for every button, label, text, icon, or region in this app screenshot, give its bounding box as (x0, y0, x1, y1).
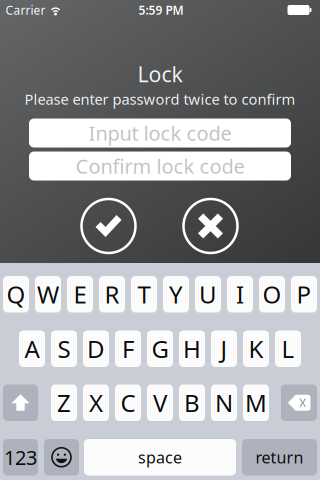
button[interactable]: H (179, 330, 205, 367)
button[interactable]: W (35, 276, 61, 312)
button[interactable]: R (99, 276, 125, 312)
staticText: Q (6, 278, 25, 310)
button[interactable]: Confirm lock code (29, 151, 291, 180)
staticText: D (87, 333, 105, 365)
staticText: space (138, 447, 182, 468)
staticText: Please enter password twice to confirm (24, 89, 295, 109)
button[interactable]: A (19, 330, 45, 367)
button[interactable]: Delete (281, 384, 317, 421)
button[interactable]: Cancel (182, 198, 238, 254)
staticText: K (248, 333, 263, 365)
button[interactable]: T (131, 276, 157, 312)
button[interactable]: D (83, 330, 109, 367)
staticText: Y (169, 278, 183, 310)
staticText: M (245, 387, 267, 419)
staticText: G (151, 333, 168, 365)
button[interactable]: K (243, 330, 269, 367)
staticText: N (215, 387, 233, 419)
staticText: C (120, 387, 135, 419)
button[interactable]: 123 (3, 439, 38, 475)
staticText: I (236, 278, 244, 310)
staticText: Carrier (5, 2, 45, 18)
staticText: Input lock code (88, 120, 231, 146)
staticText: U (199, 278, 217, 310)
staticText: V (153, 387, 167, 419)
staticText: W (37, 278, 59, 310)
staticText: H (183, 333, 201, 365)
button[interactable]: X (83, 384, 109, 421)
button[interactable]: Y (163, 276, 189, 312)
button[interactable]: Q (3, 276, 29, 312)
staticText: L (281, 333, 294, 365)
staticText: A (24, 333, 39, 365)
staticText: Z (57, 387, 71, 419)
button[interactable]: O (259, 276, 285, 312)
button[interactable]: P (291, 276, 317, 312)
button[interactable]: Z (51, 384, 77, 421)
button[interactable]: return (242, 439, 317, 475)
button[interactable]: V (147, 384, 173, 421)
staticText: S (57, 333, 70, 365)
button[interactable]: Confirm (80, 198, 136, 254)
button[interactable]: space (84, 439, 236, 475)
button[interactable]: Input lock code (29, 118, 291, 147)
staticText: 123 (4, 444, 37, 471)
staticText: F (122, 333, 134, 365)
button[interactable]: C (115, 384, 141, 421)
staticText: Confirm lock code (75, 153, 244, 179)
staticText: E (73, 278, 86, 310)
button[interactable]: I (227, 276, 253, 312)
button[interactable]: F (115, 330, 141, 367)
button[interactable]: Emoji (44, 439, 79, 475)
staticText: R (104, 278, 119, 310)
button[interactable]: B (179, 384, 205, 421)
staticText: T (137, 278, 150, 310)
button[interactable]: Shift (3, 384, 38, 421)
button[interactable]: U (195, 276, 221, 312)
button[interactable]: G (147, 330, 173, 367)
staticText: B (184, 387, 200, 419)
staticText: P (296, 278, 311, 310)
staticText: J (220, 333, 227, 365)
staticText: 5:59 PM (138, 2, 183, 18)
staticText: X (89, 387, 103, 419)
button[interactable]: S (51, 330, 77, 367)
button[interactable]: M (243, 384, 269, 421)
staticText: Lock (137, 60, 182, 88)
button[interactable]: L (275, 330, 301, 367)
button[interactable]: N (211, 384, 237, 421)
staticText: return (255, 447, 303, 468)
button[interactable]: E (67, 276, 93, 312)
staticText: O (262, 278, 281, 310)
button[interactable]: J (211, 330, 237, 367)
